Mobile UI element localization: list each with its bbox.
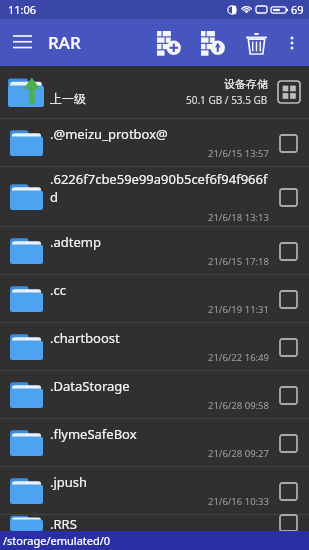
staticText: 21/6/18 13:13: [208, 211, 269, 224]
button[interactable]: .chartboost: [0, 323, 309, 370]
button[interactable]: Select .adtemp: [275, 238, 301, 264]
staticText: .6226f7cbe59e99a90b5cef6f94f966fd: [50, 170, 269, 206]
staticText: 21/6/28 09:27: [208, 447, 269, 460]
staticText: 21/6/16 10:33: [208, 495, 269, 508]
button[interactable]: Menu: [0, 21, 44, 65]
staticText: 21/6/15 17:18: [208, 255, 269, 268]
button[interactable]: .flymeSafeBox: [0, 419, 309, 466]
button[interactable]: Delete: [235, 22, 277, 64]
staticText: 69: [291, 2, 304, 17]
button[interactable]: .jpush: [0, 467, 309, 514]
button[interactable]: .6226f7cbe59e99a90b5cef6f94f966fd: [0, 167, 309, 226]
button[interactable]: Select .DataStorage: [275, 382, 301, 408]
staticText: .jpush: [50, 473, 88, 491]
button[interactable]: Select .chartboost: [275, 334, 301, 360]
staticText: 11:06: [8, 2, 37, 17]
button[interactable]: Change view: [277, 80, 301, 104]
button[interactable]: 上一级: [0, 66, 309, 118]
button[interactable]: .RRS: [0, 515, 309, 531]
button[interactable]: Select .flymeSafeBox: [275, 430, 301, 456]
button[interactable]: .DataStorage: [0, 371, 309, 418]
button[interactable]: /storage/emulated/0: [0, 531, 309, 550]
staticText: .flymeSafeBox: [50, 425, 137, 443]
staticText: 21/6/19 11:31: [208, 303, 269, 316]
button[interactable]: Select .RRS: [275, 515, 301, 531]
staticText: RAR: [48, 31, 81, 54]
button[interactable]: Select .6226f7cbe59e99a90b5cef6f94f966fd: [275, 184, 301, 210]
button[interactable]: Select .jpush: [275, 478, 301, 504]
button[interactable]: Add to archive: [147, 21, 191, 65]
staticText: .cc: [50, 281, 66, 299]
staticText: 50.1 GB / 53.5 GB: [186, 93, 268, 107]
staticText: 上一级: [50, 91, 86, 106]
staticText: /storage/emulated/0: [3, 533, 111, 548]
staticText: .DataStorage: [50, 377, 130, 395]
staticText: 设备存储: [224, 77, 268, 91]
staticText: 21/6/22 16:49: [208, 351, 269, 364]
staticText: .@meizu_protbox@: [50, 125, 168, 143]
staticText: .chartboost: [50, 329, 120, 347]
button[interactable]: .cc: [0, 275, 309, 322]
staticText: .adtemp: [50, 233, 101, 251]
button[interactable]: Select .@meizu_protbox@: [275, 130, 301, 156]
button[interactable]: .adtemp: [0, 227, 309, 274]
staticText: .RRS: [50, 515, 77, 531]
staticText: 21/6/15 13:57: [208, 147, 269, 160]
button[interactable]: Select .cc: [275, 286, 301, 312]
staticText: 21/6/28 09:58: [208, 399, 269, 412]
button[interactable]: More options: [277, 21, 307, 65]
button[interactable]: Extract archive: [191, 21, 235, 65]
button[interactable]: .@meizu_protbox@: [0, 119, 309, 166]
